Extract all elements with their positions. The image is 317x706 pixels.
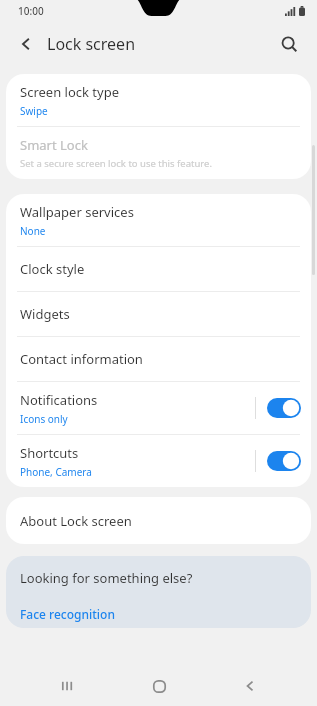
button[interactable]: Shortcuts switch — [267, 451, 301, 471]
staticText: Swipe — [20, 104, 48, 118]
staticText: Widgets — [20, 305, 70, 323]
button[interactable]: Clock style — [6, 247, 311, 291]
staticText: Lock screen — [47, 33, 136, 55]
button[interactable]: Wallpaper services — [6, 194, 311, 246]
staticText: Clock style — [20, 260, 85, 278]
staticText: About Lock screen — [20, 512, 132, 530]
button[interactable]: Widgets — [6, 292, 311, 336]
staticText: Face recognition — [20, 606, 115, 622]
button[interactable]: Back — [10, 28, 42, 60]
staticText: Smart Lock — [20, 136, 88, 154]
button[interactable]: Home — [135, 666, 183, 706]
staticText: Shortcuts — [20, 444, 79, 462]
button[interactable]: Back — [226, 666, 274, 706]
staticText: Set a secure screen lock to use this fea… — [20, 157, 212, 170]
staticText: Screen lock type — [20, 83, 119, 101]
button[interactable]: Contact information — [6, 337, 311, 381]
button[interactable]: Search — [273, 28, 305, 60]
button[interactable]: About Lock screen — [6, 497, 311, 544]
staticText: None — [20, 224, 46, 238]
button[interactable]: Smart Lock — [6, 127, 311, 179]
button[interactable]: Notifications switch — [267, 398, 301, 418]
button[interactable]: Shortcuts — [6, 435, 311, 487]
staticText: Contact information — [20, 350, 143, 368]
button[interactable]: Screen lock type — [6, 74, 311, 126]
staticText: Icons only — [20, 412, 68, 426]
button[interactable]: Notifications — [6, 382, 311, 434]
button[interactable]: Recents — [43, 666, 91, 706]
staticText: Phone, Camera — [20, 465, 92, 479]
staticText: Wallpaper services — [20, 203, 134, 221]
button[interactable]: Face recognition — [6, 600, 311, 628]
staticText: Notifications — [20, 391, 98, 409]
staticText: 10:00 — [18, 4, 44, 18]
staticText: Looking for something else? — [20, 569, 193, 587]
